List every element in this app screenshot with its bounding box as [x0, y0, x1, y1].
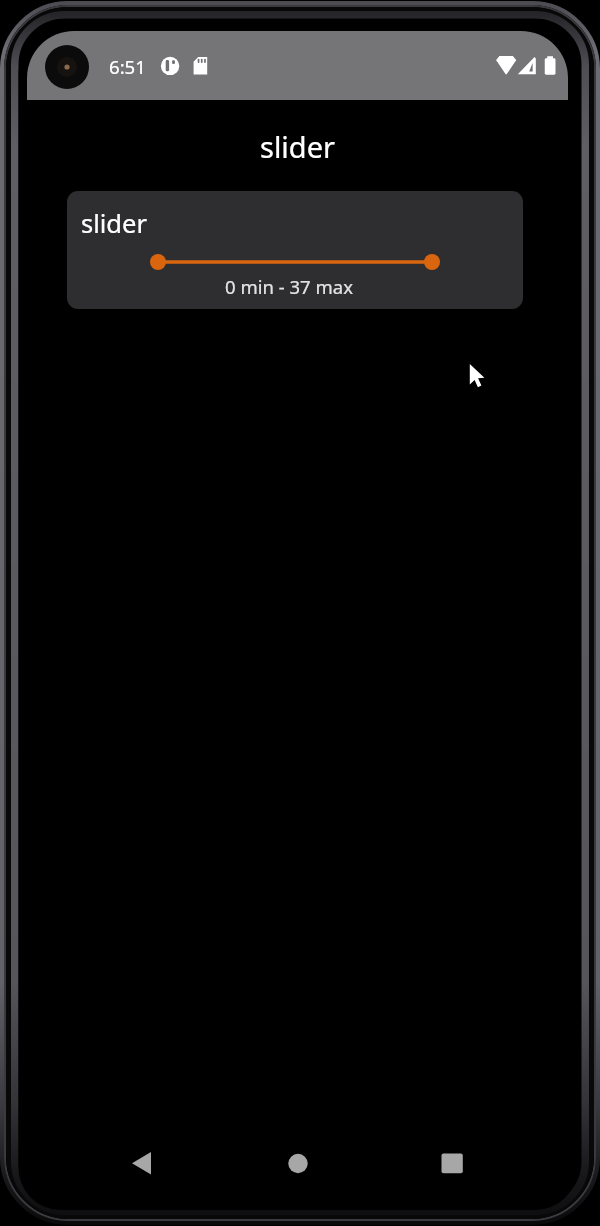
staticText: slider: [81, 206, 147, 241]
staticText: 0 min - 37 max: [67, 274, 517, 299]
staticText: slider: [260, 127, 336, 166]
button[interactable]: Back: [104, 1136, 160, 1192]
button[interactable]: Recents: [424, 1136, 480, 1192]
button[interactable]: slider: [67, 191, 523, 309]
staticText: 6:51: [109, 54, 146, 79]
button[interactable]: Range slider, 0 min to 37 max: [146, 246, 444, 278]
button[interactable]: Home: [270, 1136, 326, 1192]
